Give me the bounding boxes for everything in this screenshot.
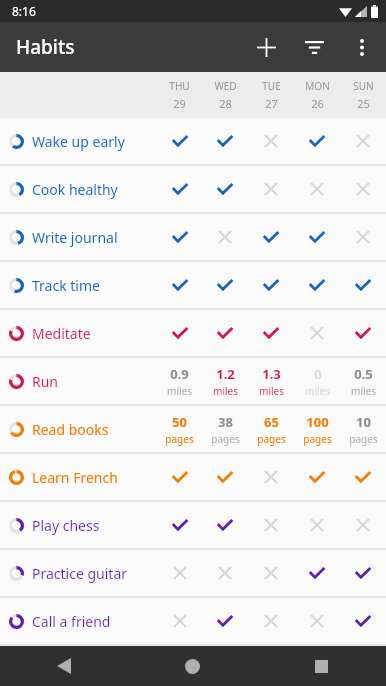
button[interactable]: Practice guitar <box>0 550 386 596</box>
staticText: Read books <box>32 420 109 439</box>
button[interactable] <box>294 214 340 260</box>
button[interactable] <box>202 598 248 644</box>
button[interactable]: Write journal <box>0 214 386 260</box>
button[interactable]: 100 <box>294 406 340 452</box>
staticText: Track time <box>32 276 100 295</box>
button[interactable]: 50 <box>157 406 202 452</box>
button[interactable]: Wake up early <box>0 118 386 164</box>
button[interactable]: Back <box>0 646 128 686</box>
staticText: 0.5 <box>354 365 373 383</box>
staticText: Cook healthy dinner <box>32 180 157 199</box>
staticText: Practice guitar <box>32 564 128 583</box>
staticText: 38 <box>218 413 233 431</box>
staticText: 0.9 <box>170 365 189 383</box>
button[interactable] <box>202 454 248 500</box>
button[interactable] <box>157 262 202 308</box>
button[interactable]: 10 <box>340 406 386 452</box>
staticText: miles <box>213 384 238 398</box>
button[interactable]: Meditate <box>0 310 386 356</box>
button[interactable] <box>157 502 202 548</box>
button[interactable]: Read books <box>0 406 386 452</box>
staticText: Write journal <box>32 228 118 247</box>
button[interactable]: 38 <box>202 406 248 452</box>
button[interactable]: Play chess <box>0 502 386 548</box>
button[interactable] <box>157 310 202 356</box>
button[interactable] <box>294 262 340 308</box>
staticText: 65 <box>264 413 279 431</box>
button[interactable] <box>294 550 340 596</box>
button[interactable]: Add habit <box>242 23 290 71</box>
staticText: Habits <box>16 34 75 60</box>
button[interactable] <box>202 262 248 308</box>
button[interactable] <box>294 454 340 500</box>
button[interactable] <box>248 262 294 308</box>
button[interactable]: 0 <box>294 358 340 404</box>
button[interactable]: Cook healthy dinner <box>0 166 386 212</box>
button[interactable] <box>340 598 386 644</box>
button[interactable]: Learn French <box>0 454 386 500</box>
button[interactable] <box>157 118 202 164</box>
staticText: pages <box>257 432 286 446</box>
button[interactable] <box>294 166 340 212</box>
button[interactable] <box>157 550 202 596</box>
button[interactable]: More options <box>338 23 386 71</box>
staticText: 100 <box>306 413 329 431</box>
button[interactable] <box>340 454 386 500</box>
button[interactable] <box>294 598 340 644</box>
button[interactable] <box>157 454 202 500</box>
button[interactable]: Recent apps <box>257 646 386 686</box>
staticText: Learn French <box>32 468 118 487</box>
button[interactable] <box>248 166 294 212</box>
button[interactable] <box>248 310 294 356</box>
button[interactable] <box>202 118 248 164</box>
staticText: miles <box>351 384 376 398</box>
staticText: pages <box>165 432 194 446</box>
button[interactable] <box>248 118 294 164</box>
button[interactable] <box>294 502 340 548</box>
button[interactable] <box>248 214 294 260</box>
button[interactable] <box>248 550 294 596</box>
button[interactable]: 1.3 <box>248 358 294 404</box>
button[interactable]: 0.5 <box>340 358 386 404</box>
button[interactable]: 1.2 <box>202 358 248 404</box>
button[interactable] <box>340 118 386 164</box>
button[interactable] <box>294 118 340 164</box>
staticText: 50 <box>172 413 187 431</box>
button[interactable] <box>248 502 294 548</box>
staticText: pages <box>349 432 378 446</box>
button[interactable] <box>248 454 294 500</box>
staticText: pages <box>211 432 240 446</box>
button[interactable]: Filter <box>290 23 338 71</box>
staticText: Play chess <box>32 516 100 535</box>
staticText: miles <box>167 384 192 398</box>
button[interactable] <box>294 310 340 356</box>
button[interactable]: 0.9 <box>157 358 202 404</box>
button[interactable] <box>157 214 202 260</box>
staticText: 1.3 <box>262 365 281 383</box>
staticText: SUN <box>353 79 374 93</box>
staticText: miles <box>259 384 284 398</box>
button[interactable] <box>340 262 386 308</box>
button[interactable] <box>340 550 386 596</box>
staticText: Wake up early <box>32 132 125 151</box>
button[interactable] <box>340 166 386 212</box>
staticText: Call a friend <box>32 612 111 631</box>
button[interactable] <box>202 214 248 260</box>
button[interactable] <box>157 598 202 644</box>
button[interactable]: Track time <box>0 262 386 308</box>
button[interactable]: Home <box>128 646 257 686</box>
button[interactable] <box>202 502 248 548</box>
button[interactable] <box>340 502 386 548</box>
button[interactable] <box>202 310 248 356</box>
staticText: 10 <box>356 413 371 431</box>
button[interactable] <box>202 166 248 212</box>
button[interactable] <box>202 550 248 596</box>
button[interactable]: Call a friend <box>0 598 386 644</box>
button[interactable] <box>157 166 202 212</box>
button[interactable] <box>340 214 386 260</box>
button[interactable] <box>340 310 386 356</box>
button[interactable]: Run <box>0 358 386 404</box>
button[interactable] <box>248 598 294 644</box>
button[interactable]: 65 <box>248 406 294 452</box>
staticText: 8:16 <box>12 3 36 19</box>
